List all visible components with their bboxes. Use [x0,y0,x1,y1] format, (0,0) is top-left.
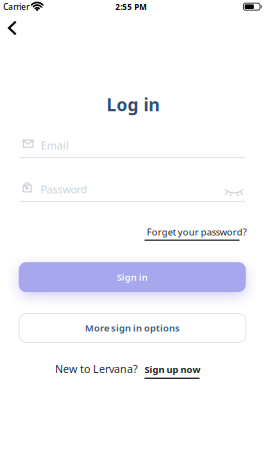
staticText: More sign in options [85,322,180,334]
staticText: New to Lervana? [55,362,138,376]
button[interactable]: Back [0,0,265,471]
staticText: Carrier [3,1,29,12]
staticText: Sign in [117,271,148,283]
button[interactable]: More sign in options [19,313,246,342]
staticText: Email [41,138,69,152]
staticText: Forget your password? [147,226,247,238]
staticText: Password [41,182,88,196]
staticText: Log in [106,93,159,116]
staticText: 2:55 PM [115,1,147,12]
staticText: Sign up now [144,363,200,375]
button[interactable]: Sign up now [144,363,264,375]
button[interactable]: Show password [0,0,265,471]
button[interactable]: Forget your password? [27,226,247,238]
button[interactable]: Sign in [19,262,246,292]
